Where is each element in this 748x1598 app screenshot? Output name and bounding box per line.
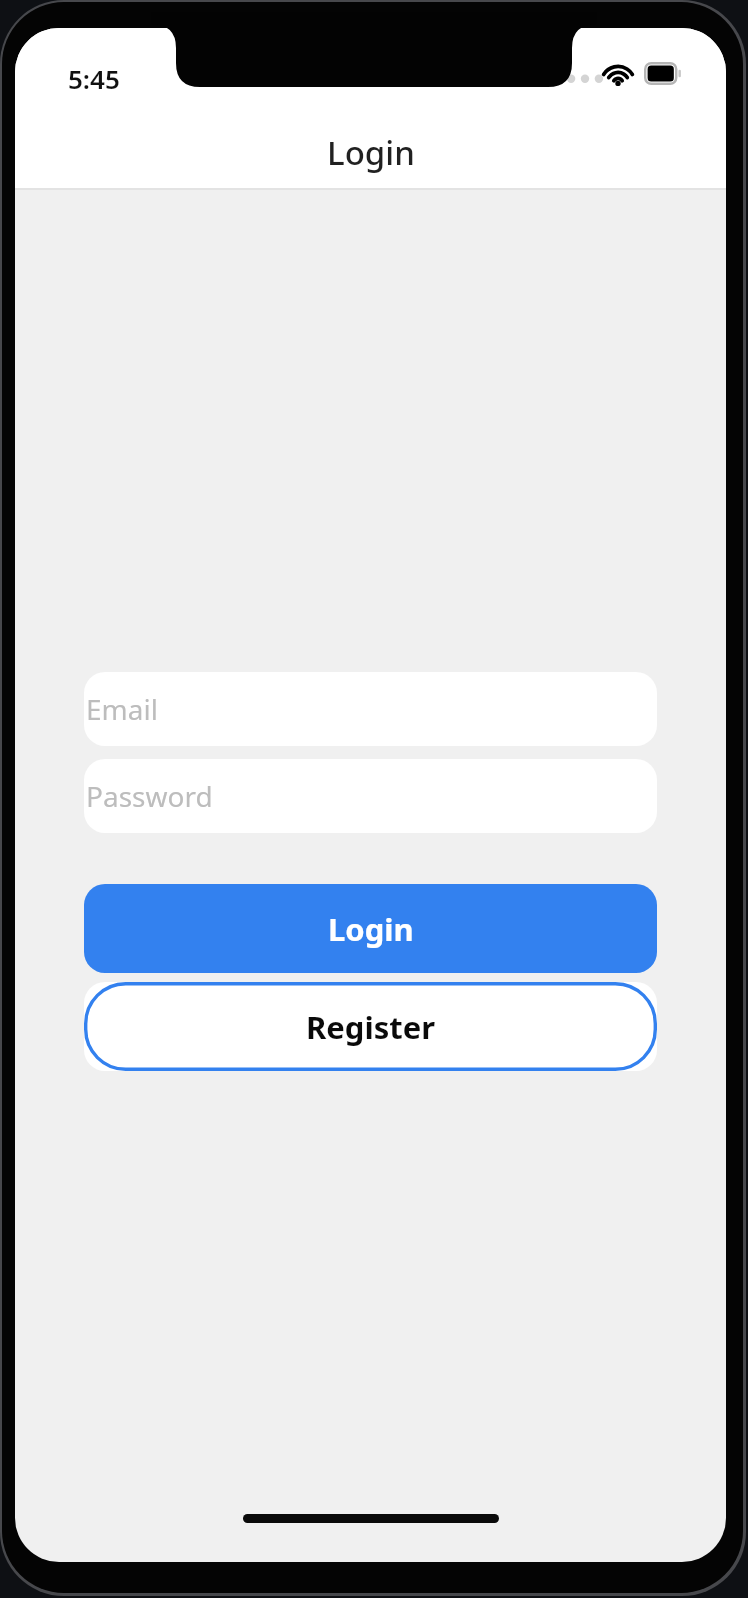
staticText: Register — [306, 1006, 436, 1048]
button[interactable]: Password — [84, 759, 657, 833]
button[interactable]: Email — [84, 672, 657, 746]
staticText: 5:45 — [68, 61, 120, 96]
button[interactable]: Login — [84, 884, 657, 973]
staticText: Email — [86, 690, 158, 728]
staticText: Login — [327, 130, 415, 175]
staticText: Login — [328, 908, 414, 950]
staticText: Password — [86, 777, 213, 815]
button[interactable]: Register — [84, 982, 657, 1071]
